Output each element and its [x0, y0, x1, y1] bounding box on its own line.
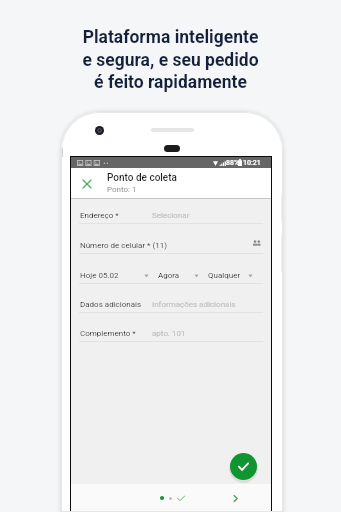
button[interactable]: Agora	[158, 268, 199, 282]
staticText: Selecionar	[152, 211, 190, 220]
button[interactable]: Qualquer	[208, 268, 253, 282]
staticText: 88%	[226, 159, 240, 167]
staticText: Hoje 05.02	[80, 271, 119, 280]
staticText: 10:21	[243, 159, 261, 167]
staticText: Informações adicionais	[152, 300, 236, 309]
button[interactable]: Complemento *	[71, 313, 271, 342]
button[interactable]: Confirmar	[230, 453, 257, 480]
button[interactable]: Endereço *	[71, 199, 271, 224]
staticText: Plataforma inteligente e segura, e seu p…	[82, 27, 259, 92]
staticText: Número de celular * (11)	[80, 241, 168, 250]
button[interactable]: Fechar	[79, 168, 94, 199]
button[interactable]: Próximo	[227, 484, 243, 512]
staticText: Endereço *	[80, 211, 119, 220]
button[interactable]: Número de celular * (11)	[71, 224, 271, 254]
button[interactable]: Dados adicionais	[71, 284, 271, 313]
staticText: apto. 101	[152, 329, 186, 338]
staticText: Qualquer	[208, 271, 241, 280]
staticText: Ponto: 1	[107, 185, 137, 194]
staticText: Complemento *	[80, 329, 136, 338]
button[interactable]: Hoje 05.02	[80, 268, 149, 282]
staticText: Agora	[158, 271, 180, 280]
staticText: Ponto de coleta	[107, 172, 177, 184]
staticText: Dados adicionais	[80, 300, 142, 309]
